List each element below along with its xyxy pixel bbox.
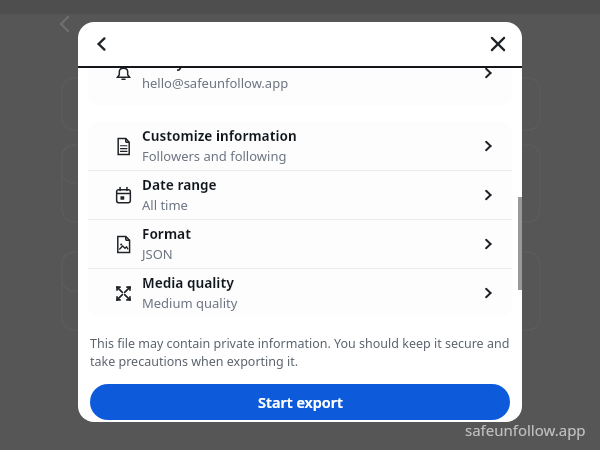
staticText: hello@safeunfollow.app	[142, 74, 289, 92]
staticText: Medium quality	[142, 294, 238, 312]
staticText: Date range	[142, 176, 217, 194]
staticText: All time	[142, 196, 188, 214]
staticText: Customize information	[142, 127, 297, 145]
staticText: JSON	[142, 245, 173, 263]
staticText: Notify	[142, 68, 185, 72]
button[interactable]: Start export	[90, 384, 510, 420]
staticText: safeunfollow.app	[465, 420, 586, 440]
staticText: Media quality	[142, 274, 234, 292]
staticText: Format	[142, 225, 191, 243]
button[interactable]: Close	[480, 26, 516, 62]
staticText: Followers and following	[142, 147, 287, 165]
staticText: This file may contain private informatio…	[90, 335, 510, 370]
button[interactable]: Notify	[88, 68, 512, 106]
button[interactable]: Media quality	[88, 269, 512, 317]
staticText: Start export	[258, 392, 343, 412]
button[interactable]: Back	[84, 26, 120, 62]
button[interactable]: Format	[88, 220, 512, 268]
button[interactable]: Date range	[88, 171, 512, 219]
button[interactable]: Customize information	[88, 122, 512, 170]
